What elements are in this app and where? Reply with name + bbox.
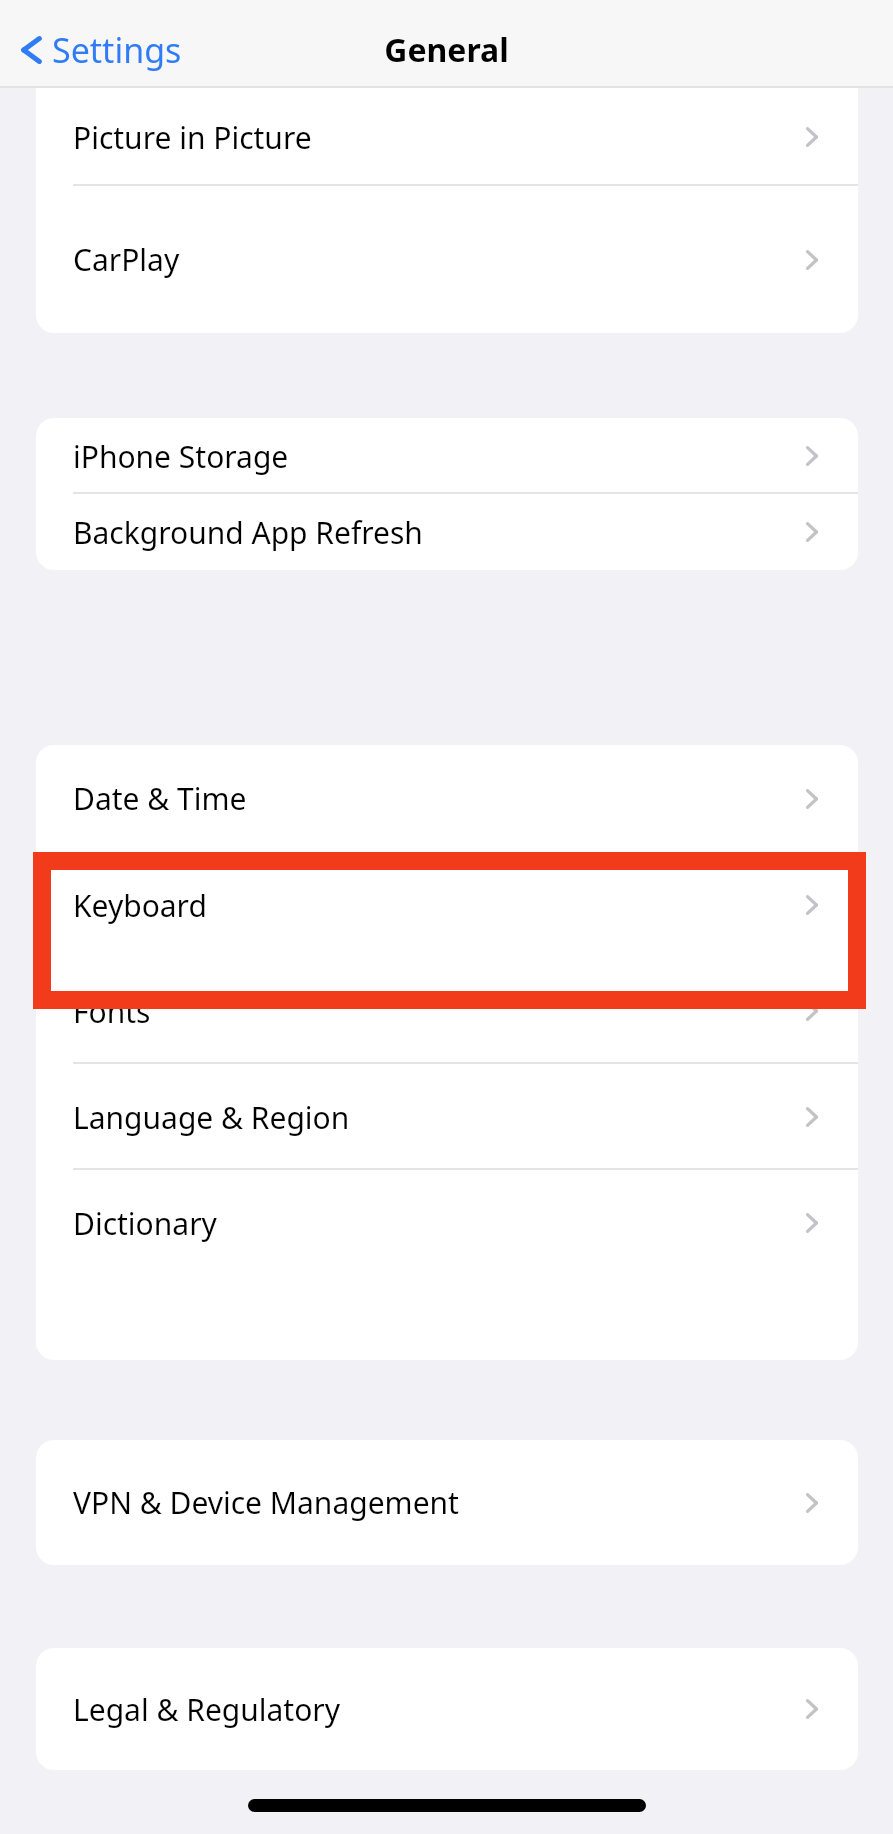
staticText: Dictionary <box>73 1203 217 1244</box>
staticText: iPhone Storage <box>73 436 289 477</box>
staticText: Keyboard <box>73 885 207 926</box>
button[interactable]: CarPlay <box>36 186 858 333</box>
staticText: CarPlay <box>73 239 180 280</box>
button[interactable]: Dictionary <box>36 1170 858 1276</box>
staticText: Picture in Picture <box>73 117 312 158</box>
button[interactable]: Language & Region <box>36 1064 858 1170</box>
button[interactable]: Fonts <box>36 958 858 1064</box>
button[interactable]: Date & Time <box>36 745 858 852</box>
staticText: Language & Region <box>73 1097 350 1138</box>
staticText: Settings <box>52 27 182 73</box>
button[interactable]: Picture in Picture <box>36 88 858 186</box>
button[interactable]: Legal & Regulatory <box>36 1648 858 1770</box>
button[interactable]: Back to Settings <box>18 27 182 73</box>
staticText: Date & Time <box>73 778 247 819</box>
staticText: Fonts <box>73 991 151 1032</box>
button[interactable]: Keyboard <box>36 852 858 958</box>
staticText: Legal & Regulatory <box>73 1689 341 1730</box>
staticText: Background App Refresh <box>73 512 423 553</box>
staticText: VPN & Device Management <box>73 1482 459 1523</box>
button[interactable]: iPhone Storage <box>36 418 858 494</box>
button[interactable]: Background App Refresh <box>36 494 858 570</box>
staticText: General <box>384 28 509 72</box>
button[interactable]: VPN & Device Management <box>36 1440 858 1565</box>
